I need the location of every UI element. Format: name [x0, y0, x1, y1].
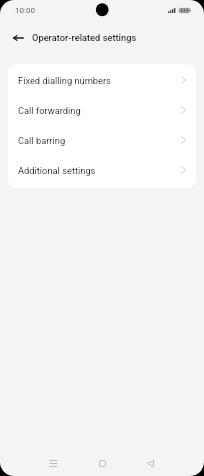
- staticText: 10:00: [15, 6, 35, 15]
- staticText: Call barring: [18, 135, 66, 146]
- button[interactable]: Back: [5, 25, 31, 51]
- button[interactable]: Back: [136, 452, 164, 474]
- button[interactable]: Fixed dialling numbers: [8, 65, 196, 95]
- button[interactable]: Additional settings: [8, 155, 196, 185]
- button[interactable]: Call barring: [8, 125, 196, 155]
- staticText: Additional settings: [18, 165, 96, 176]
- button[interactable]: Recent apps: [39, 452, 67, 474]
- staticText: Fixed dialling numbers: [18, 75, 111, 86]
- staticText: Operator-related settings: [32, 32, 137, 43]
- staticText: Call forwarding: [18, 105, 81, 116]
- button[interactable]: Call forwarding: [8, 95, 196, 125]
- button[interactable]: Home: [88, 452, 116, 474]
